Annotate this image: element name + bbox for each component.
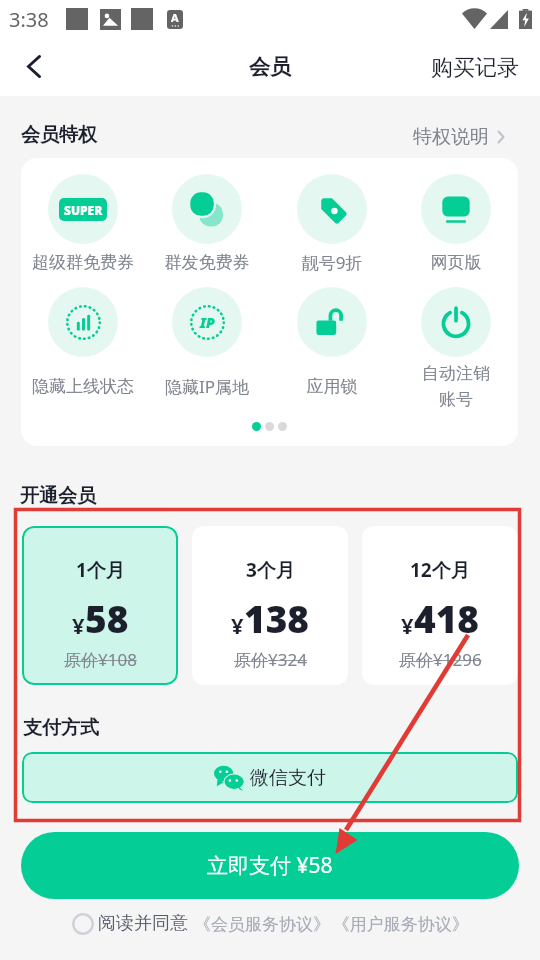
staticText: 微信支付 [250,766,326,790]
staticText: 3:38 [9,6,49,33]
staticText: 应用锁 [270,376,394,397]
staticText: 3个月 [246,557,295,583]
staticText: 隐藏IP属地 [145,375,269,398]
staticText: 自动注销 账号 [394,363,518,410]
button[interactable]: IP [145,287,269,357]
staticText: 138 [244,593,310,643]
staticText: 阅读并同意 [98,912,188,935]
button[interactable]: 12个月 [362,526,518,685]
staticText: 立即支付 ¥58 [207,851,333,880]
staticText: 1个月 [76,557,125,583]
staticText: 会员特权 [21,123,97,147]
button[interactable] [21,287,145,357]
staticText: ¥ [401,610,414,640]
button[interactable]: 立即支付 ¥58 [21,832,519,899]
button[interactable] [145,174,269,244]
staticText: 群发免费券 [145,252,269,273]
button[interactable] [270,174,394,244]
staticText: IP [200,313,215,332]
staticText: 原价¥324 [234,648,307,671]
staticText: 网页版 [394,252,518,273]
button[interactable]: 3个月 [192,526,348,685]
button[interactable]: 特权说明 [413,125,505,149]
button[interactable] [394,174,518,244]
staticText: ¥ [231,610,244,640]
staticText: 58 [85,593,129,643]
button[interactable]: 返回 [10,42,58,90]
staticText: 支付方式 [23,716,99,740]
staticText: 原价¥108 [64,648,137,671]
button[interactable]: 购买记录 [419,42,531,94]
staticText: 《会员服务协议》 《用户服务协议》 [194,912,469,935]
staticText: 购买记录 [431,54,519,82]
button[interactable]: SUPER [21,174,145,244]
staticText: 12个月 [410,557,470,583]
button[interactable] [270,287,394,357]
button[interactable]: 阅读并同意 [0,912,540,935]
staticText: A [171,10,179,25]
button[interactable] [394,287,518,357]
staticText: 靓号9折 [270,251,394,274]
staticText: 超级群免费券 [21,252,145,273]
staticText: 特权说明 [413,125,489,149]
staticText: 开通会员 [20,484,96,508]
button[interactable]: 1个月 [22,526,178,685]
button[interactable]: 微信支付 [22,752,518,803]
staticText: 会员 [249,54,291,80]
staticText: 原价¥1296 [399,648,482,671]
staticText: ¥ [72,610,85,640]
staticText: SUPER [64,202,103,218]
staticText: 418 [414,593,480,643]
staticText: 隐藏上线状态 [21,376,145,397]
